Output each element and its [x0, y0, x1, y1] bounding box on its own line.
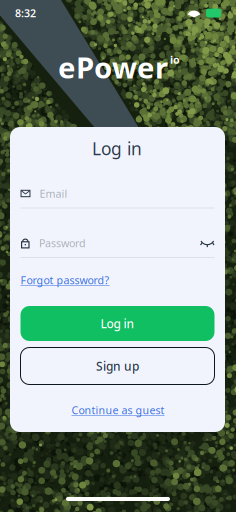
staticText: ePower [58, 47, 168, 86]
staticText: Log in [100, 315, 134, 331]
staticText: Password [39, 236, 86, 250]
staticText: Email [39, 186, 67, 201]
staticText: Sign up [96, 358, 139, 374]
staticText: Log in [92, 137, 142, 160]
button[interactable]: Log in [20, 306, 214, 341]
button[interactable]: Forgot password? [20, 272, 214, 288]
staticText: 8:32 [15, 6, 36, 20]
button[interactable]: Sign up [20, 347, 214, 384]
staticText: io [170, 52, 180, 67]
staticText: Forgot password? [20, 273, 109, 287]
button[interactable]: Continue as guest [71, 402, 164, 418]
staticText: Continue as guest [71, 403, 164, 417]
